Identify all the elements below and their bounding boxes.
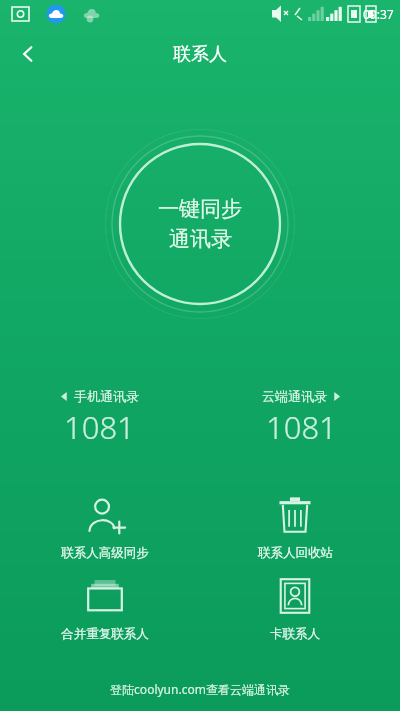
button[interactable]: 手机通讯录 — [24, 388, 174, 448]
staticText: 合并重复联系人 — [61, 626, 149, 642]
staticText: 一键同步 — [158, 196, 242, 222]
staticText: 卡联系人 — [270, 626, 320, 642]
button[interactable]: 登陆coolyun.com查看云端通讯录 — [110, 681, 290, 697]
staticText: 1081 — [64, 406, 135, 448]
button[interactable]: 卡联系人 — [210, 573, 380, 644]
staticText: 联系人 — [173, 43, 227, 66]
button[interactable]: 联系人高级同步 — [20, 492, 190, 563]
button[interactable]: 合并重复联系人 — [20, 573, 190, 644]
button[interactable]: 云端通讯录 — [226, 388, 376, 448]
staticText: 09:37 — [363, 6, 394, 22]
staticText: 联系人回收站 — [258, 545, 333, 561]
staticText: 通讯录 — [169, 226, 232, 252]
button[interactable]: Back — [6, 32, 50, 76]
staticText: 云端通讯录 — [262, 388, 327, 404]
staticText: 1081 — [266, 406, 337, 448]
staticText: 手机通讯录 — [74, 388, 139, 404]
button[interactable]: 联系人回收站 — [210, 492, 380, 563]
button[interactable]: 一键同步 — [105, 129, 295, 319]
staticText: 联系人高级同步 — [61, 545, 149, 561]
